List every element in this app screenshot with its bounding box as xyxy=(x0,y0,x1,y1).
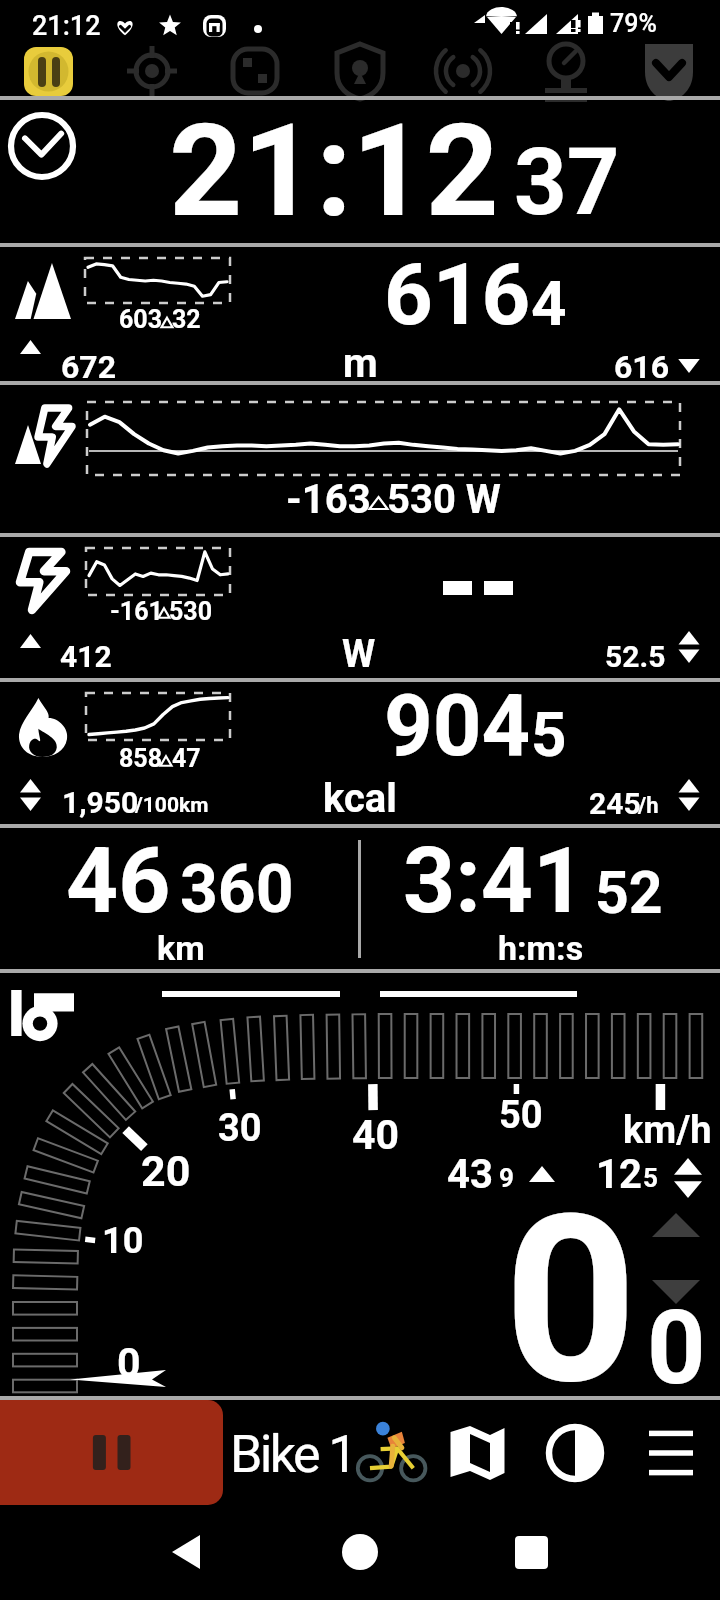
staticText: 904 xyxy=(384,676,531,776)
button[interactable]: Bike profile xyxy=(353,1414,431,1492)
staticText: 5 xyxy=(643,1163,658,1193)
staticText: kcal xyxy=(323,775,397,822)
staticText: 530 W xyxy=(387,476,501,523)
staticText: 616 xyxy=(384,245,531,345)
staticText: 21:12 xyxy=(169,96,499,246)
button[interactable]: Pause xyxy=(0,1400,223,1505)
staticText: 12 xyxy=(596,1151,642,1198)
staticText: 10 xyxy=(102,1220,144,1262)
staticText: 21:12 xyxy=(32,10,101,42)
staticText: 1,950 xyxy=(62,785,139,820)
staticText: 0 xyxy=(647,1288,706,1408)
staticText: 672 xyxy=(61,348,117,386)
button[interactable]: Brightness xyxy=(546,1413,604,1471)
staticText: 0 xyxy=(504,1165,638,1437)
staticText: km/h xyxy=(623,1108,712,1153)
staticText: 360 xyxy=(180,851,294,928)
staticText: 20 xyxy=(141,1146,191,1196)
staticText: 616 xyxy=(614,348,670,386)
staticText: 37 xyxy=(514,129,620,237)
staticText: 30 xyxy=(218,1106,262,1151)
staticText: km xyxy=(157,928,205,968)
staticText: 79% xyxy=(610,9,657,38)
staticText: /h xyxy=(638,793,659,819)
staticText: 32 xyxy=(172,305,201,334)
staticText: 52 xyxy=(595,858,663,927)
staticText: 5 xyxy=(531,698,567,771)
staticText: /100km xyxy=(135,793,209,818)
staticText: 46 xyxy=(66,828,171,935)
staticText: 412 xyxy=(60,639,112,674)
staticText: h:m:s xyxy=(498,928,584,968)
staticText: 43 xyxy=(447,1151,493,1198)
staticText: Bike 1 xyxy=(230,1424,352,1485)
staticText: 40 xyxy=(352,1111,400,1159)
staticText: W xyxy=(342,632,376,677)
staticText: 858 xyxy=(119,744,163,773)
staticText: 245 xyxy=(589,786,641,821)
staticText: 52.5 xyxy=(605,639,666,674)
staticText: 9 xyxy=(499,1163,514,1193)
staticText: 3:41 xyxy=(403,828,586,935)
staticText: 50 xyxy=(499,1093,543,1138)
staticText: 47 xyxy=(172,744,201,773)
button[interactable]: Bike 1 xyxy=(230,1418,352,1490)
staticText: -163 xyxy=(286,476,371,523)
staticText: 530 xyxy=(169,597,213,626)
button[interactable]: Map xyxy=(440,1413,520,1493)
staticText: -161 xyxy=(110,597,163,626)
staticText: m xyxy=(343,340,378,387)
staticText: 0 xyxy=(117,1339,141,1387)
staticText: 603 xyxy=(119,305,163,334)
button[interactable]: Menu xyxy=(631,1413,711,1493)
staticText: 4 xyxy=(531,267,567,340)
